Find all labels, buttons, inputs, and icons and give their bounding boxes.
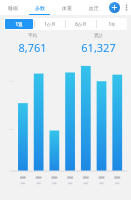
button[interactable]: [0, 55, 131, 200]
staticText: 8,761: [18, 40, 47, 55]
staticText: 61,327: [81, 40, 116, 55]
button[interactable]: 1年: [98, 19, 126, 29]
staticText: 睡眠: [8, 5, 18, 11]
staticText: 1年: [108, 21, 116, 27]
staticText: 6か月: [75, 21, 87, 27]
staticText: 血圧: [89, 5, 99, 11]
button[interactable]: 血圧: [80, 0, 107, 15]
button[interactable]: 平均: [0, 33, 65, 55]
staticText: 平均: [28, 33, 37, 39]
button[interactable]: 6か月: [67, 19, 95, 29]
button[interactable]: 累計: [65, 33, 131, 55]
staticText: 歩数: [35, 5, 45, 11]
button[interactable]: 1か月: [36, 19, 64, 29]
staticText: 1週: [15, 21, 23, 27]
staticText: 体重: [62, 5, 72, 11]
button[interactable]: 睡眠: [0, 0, 26, 15]
button[interactable]: More options: [122, 0, 131, 15]
button[interactable]: 歩数: [26, 0, 53, 15]
button[interactable]: Add: [107, 0, 122, 15]
button[interactable]: 1週: [5, 19, 33, 29]
button[interactable]: 体重: [53, 0, 80, 15]
staticText: 累計: [94, 33, 103, 39]
staticText: 1か月: [44, 21, 56, 27]
